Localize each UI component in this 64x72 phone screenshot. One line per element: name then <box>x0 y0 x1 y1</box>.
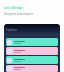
button[interactable]: Explore <box>4 24 60 72</box>
staticText: Let's Design <box>4 6 23 10</box>
button[interactable] <box>6 65 58 72</box>
staticText: Designers & developers <box>4 12 33 16</box>
button[interactable] <box>6 47 58 55</box>
staticText: Explore <box>6 28 18 32</box>
button[interactable] <box>6 38 58 46</box>
button[interactable] <box>6 56 58 64</box>
